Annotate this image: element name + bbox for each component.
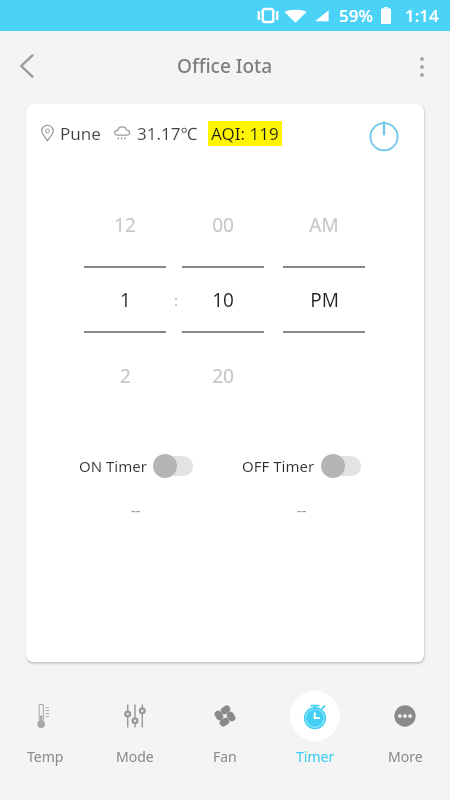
staticText: 2 bbox=[120, 363, 131, 385]
staticText: More bbox=[388, 747, 423, 766]
staticText: AM bbox=[309, 212, 339, 234]
staticText: AQI: 119 bbox=[211, 122, 279, 145]
staticText: 1:14 bbox=[405, 4, 439, 27]
staticText: Fan bbox=[213, 747, 237, 766]
staticText: Temp bbox=[27, 747, 64, 766]
staticText: 31.17℃ bbox=[137, 122, 198, 145]
button[interactable]: More bbox=[360, 686, 450, 776]
button[interactable]: More options bbox=[400, 45, 444, 89]
staticText: Office Iota bbox=[177, 53, 273, 79]
staticText: OFF Timer bbox=[242, 456, 315, 476]
staticText: Pune bbox=[60, 122, 101, 145]
button[interactable]: Power bbox=[362, 113, 406, 157]
staticText: 12 bbox=[114, 212, 136, 234]
staticText: PM bbox=[310, 287, 339, 309]
staticText: 1 bbox=[120, 287, 131, 309]
button[interactable]: OFF Timer bbox=[242, 453, 361, 478]
staticText: ON Timer bbox=[79, 456, 147, 476]
staticText: 00 bbox=[212, 212, 234, 234]
button[interactable]: Timer bbox=[270, 686, 360, 776]
button[interactable]: Fan bbox=[180, 686, 270, 776]
staticText: 10 bbox=[212, 287, 234, 309]
button[interactable]: Mode bbox=[90, 686, 180, 776]
staticText: 20 bbox=[212, 363, 234, 385]
button[interactable]: Back bbox=[4, 43, 50, 89]
staticText: Mode bbox=[116, 747, 154, 766]
button[interactable]: Temp bbox=[0, 686, 90, 776]
staticText: : bbox=[174, 290, 179, 310]
staticText: Timer bbox=[296, 747, 335, 766]
staticText: -- bbox=[131, 500, 141, 520]
staticText: -- bbox=[297, 500, 307, 520]
button[interactable]: ON Timer bbox=[79, 453, 193, 478]
staticText: 59% bbox=[339, 4, 373, 27]
